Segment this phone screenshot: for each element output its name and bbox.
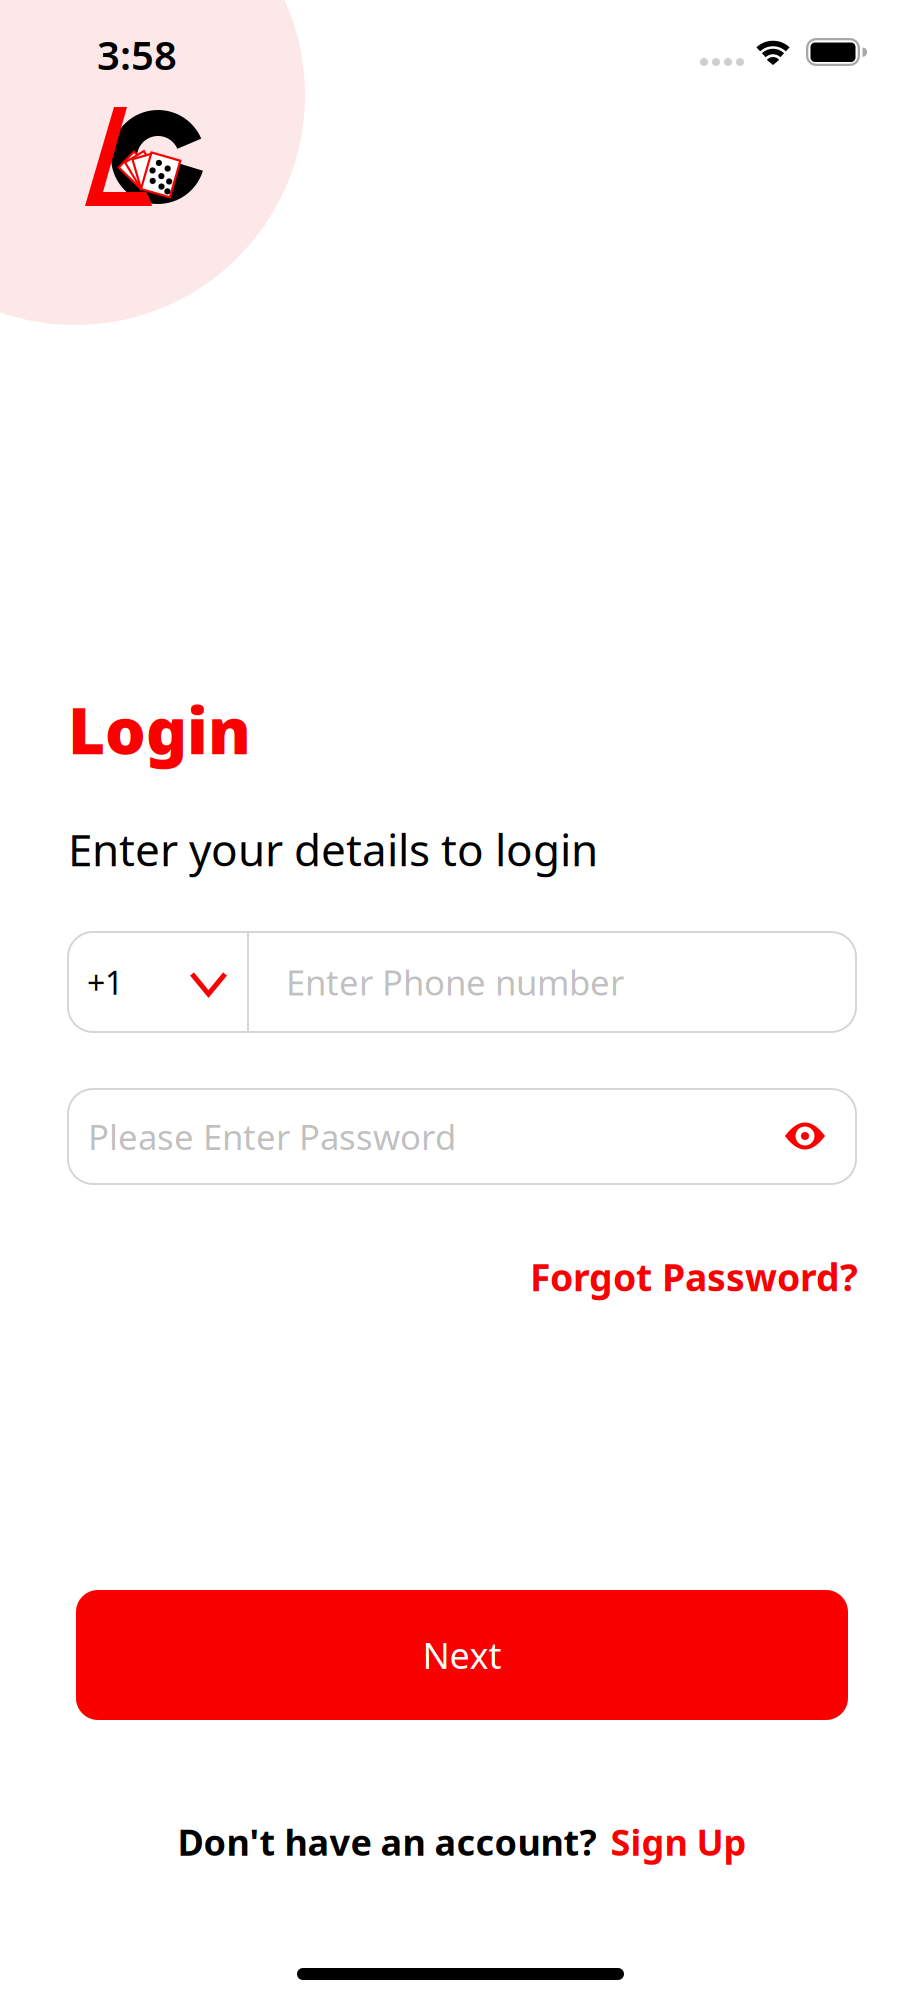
staticText: Enter Phone number (286, 959, 624, 1005)
staticText: Next (422, 1631, 501, 1679)
button[interactable]: Sign Up (610, 1818, 746, 1866)
staticText: +1 (87, 961, 123, 1003)
button[interactable]: Next (76, 1590, 848, 1720)
button[interactable]: Show password (775, 1106, 835, 1166)
staticText: Sign Up (610, 1818, 746, 1866)
staticText: Forgot Password? (530, 1252, 858, 1302)
button[interactable]: Forgot Password? (530, 1252, 858, 1302)
staticText: 3:58 (97, 28, 177, 81)
staticText: Don't have an account? (177, 1818, 596, 1866)
button[interactable]: Country code (67, 931, 248, 1033)
staticText: Please Enter Password (88, 1113, 456, 1159)
staticText: Enter your details to login (68, 820, 598, 878)
button[interactable]: Please Enter Password (67, 1088, 738, 1185)
staticText: Login (68, 687, 251, 772)
button[interactable]: Enter Phone number (248, 931, 856, 1033)
